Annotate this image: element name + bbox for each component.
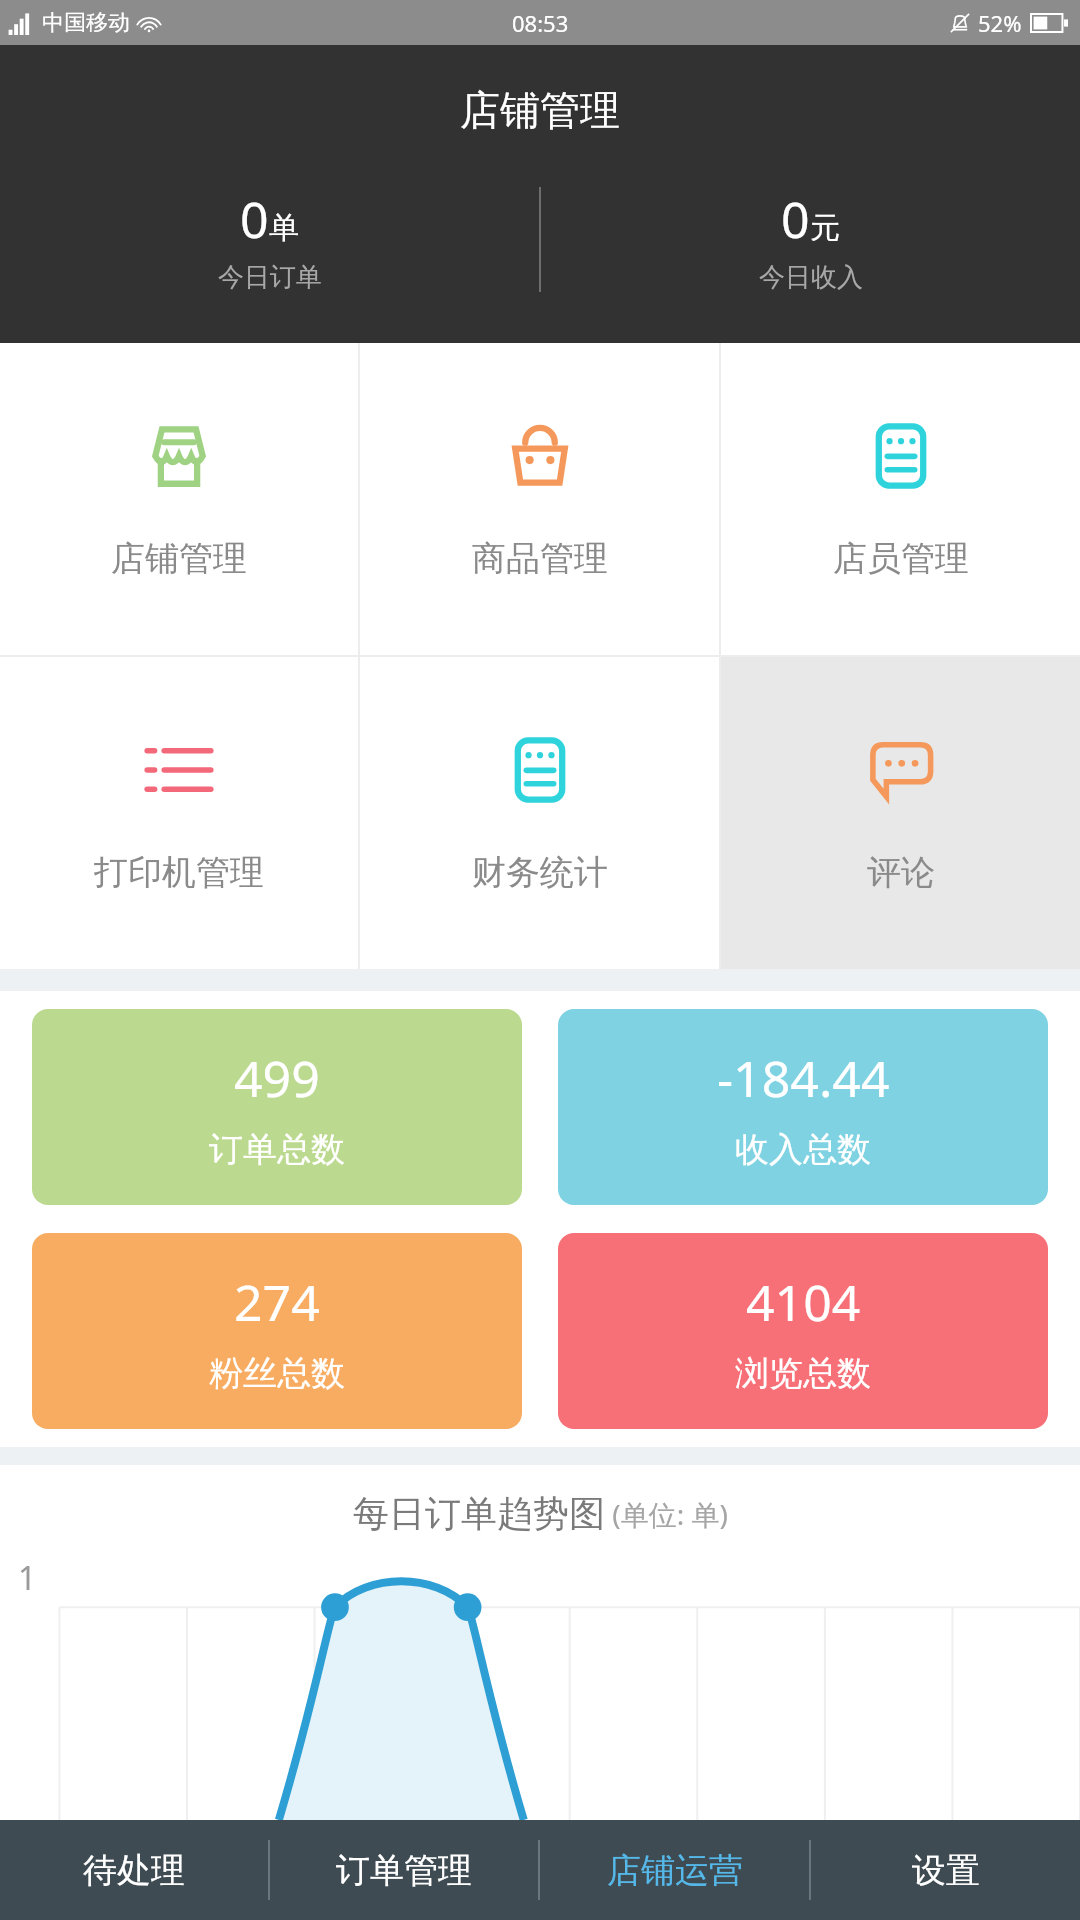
staticText: 08:53 xyxy=(512,8,569,38)
button[interactable]: 设置 xyxy=(811,1820,1080,1920)
staticText: 粉丝总数 xyxy=(209,1352,345,1395)
staticText: -184.44 xyxy=(717,1044,890,1112)
button[interactable]: 4104 xyxy=(558,1233,1048,1429)
staticText: 店铺管理 xyxy=(460,85,620,135)
staticText: 499 xyxy=(234,1044,320,1112)
button[interactable]: 打印机管理 xyxy=(0,657,358,969)
staticText: 财务统计 xyxy=(472,851,608,894)
button[interactable]: 订单管理 xyxy=(270,1820,538,1920)
staticText: 0 xyxy=(781,185,810,253)
button[interactable]: 商品管理 xyxy=(360,343,719,655)
staticText: 0 xyxy=(240,185,269,253)
staticText: 52% xyxy=(978,8,1022,38)
staticText: 单 xyxy=(269,209,299,247)
staticText: 订单总数 xyxy=(209,1128,345,1171)
button[interactable]: -184.44 xyxy=(558,1009,1048,1205)
button[interactable]: 店铺运营 xyxy=(540,1820,809,1920)
button[interactable]: 店员管理 xyxy=(721,343,1080,655)
staticText: 今日订单 xyxy=(218,261,322,294)
button[interactable]: 274 xyxy=(32,1233,522,1429)
button[interactable]: 待处理 xyxy=(0,1820,268,1920)
staticText: 元 xyxy=(810,209,840,247)
staticText: 店铺运营 xyxy=(607,1849,743,1892)
staticText: 274 xyxy=(234,1268,320,1336)
staticText: 商品管理 xyxy=(472,537,608,580)
staticText: 4104 xyxy=(746,1268,861,1336)
staticText: 打印机管理 xyxy=(94,851,264,894)
staticText: 收入总数 xyxy=(735,1128,871,1171)
staticText: 订单管理 xyxy=(336,1849,472,1892)
staticText: 浏览总数 xyxy=(735,1352,871,1395)
staticText: 评论 xyxy=(867,851,935,894)
staticText: 设置 xyxy=(912,1849,980,1892)
staticText: 中国移动 xyxy=(42,9,130,37)
button[interactable]: 评论 xyxy=(721,657,1080,969)
button[interactable]: 财务统计 xyxy=(360,657,719,969)
staticText: (单位: 单) xyxy=(605,1495,728,1533)
staticText: 店员管理 xyxy=(833,537,969,580)
staticText: 每日订单趋势图 xyxy=(353,1491,605,1536)
staticText: 1 xyxy=(18,1556,37,1600)
button[interactable]: 499 xyxy=(32,1009,522,1205)
button[interactable]: 店铺管理 xyxy=(0,343,358,655)
staticText: 待处理 xyxy=(83,1849,185,1892)
staticText: 今日收入 xyxy=(759,261,863,294)
staticText: 店铺管理 xyxy=(111,537,247,580)
